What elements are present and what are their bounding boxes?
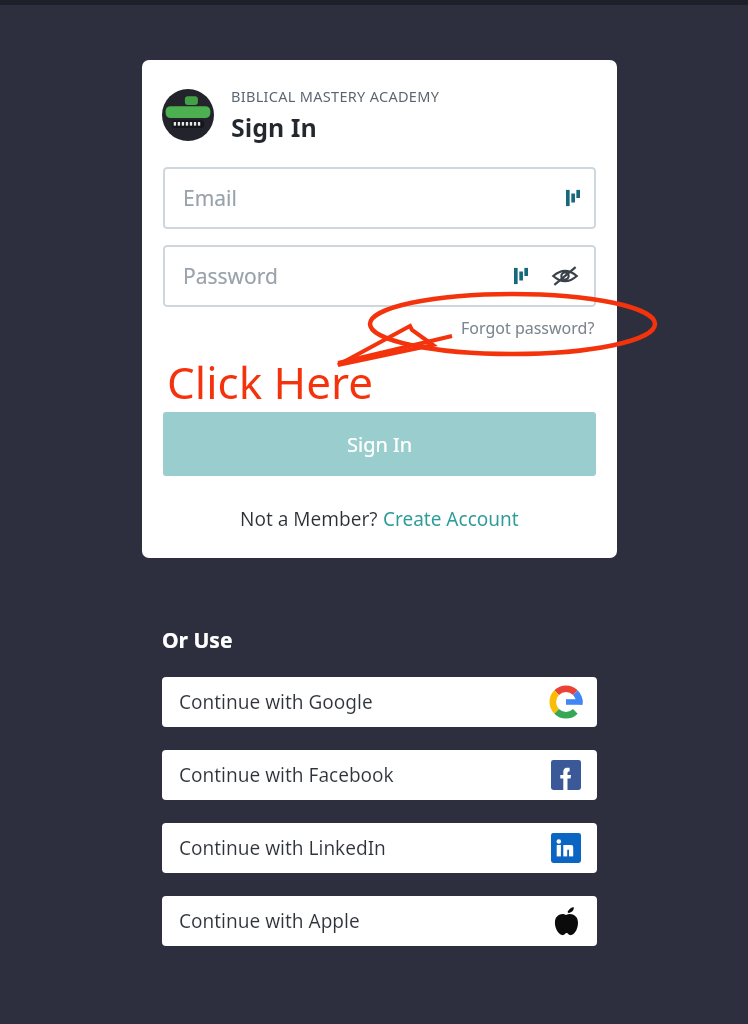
button[interactable]: Sign In — [163, 412, 596, 476]
button[interactable]: Continue with LinkedIn — [162, 823, 597, 873]
button[interactable]: Continue with Facebook — [162, 750, 597, 800]
button[interactable]: Forgot password? — [461, 317, 595, 339]
staticText: Password — [183, 262, 278, 291]
button[interactable]: Show password — [550, 261, 580, 291]
button[interactable]: Password — [163, 245, 596, 307]
staticText: Continue with LinkedIn — [179, 835, 386, 861]
staticText: Forgot password? — [461, 317, 595, 339]
button[interactable]: Email — [163, 167, 596, 229]
staticText: Continue with Apple — [179, 908, 360, 934]
button[interactable]: Create Account — [383, 506, 519, 532]
staticText: Sign In — [231, 110, 317, 144]
staticText: Or Use — [162, 626, 233, 655]
button[interactable]: Continue with Google — [162, 677, 597, 727]
staticText: Sign In — [347, 431, 413, 458]
staticText: Create Account — [383, 506, 519, 532]
staticText: BIBLICAL MASTERY ACADEMY — [231, 86, 440, 106]
staticText: Email — [183, 184, 237, 213]
button[interactable]: Continue with Apple — [162, 896, 597, 946]
staticText: Continue with Google — [179, 689, 373, 715]
staticText: Not a Member? — [240, 506, 383, 532]
staticText: Continue with Facebook — [179, 762, 394, 788]
staticText: Click Here — [167, 352, 374, 412]
